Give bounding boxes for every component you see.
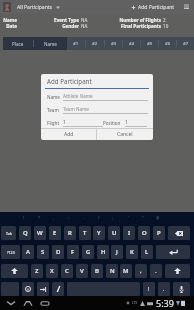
button[interactable]: Y xyxy=(93,226,105,240)
button[interactable]: ENT xyxy=(156,245,190,259)
button[interactable]: ! xyxy=(143,282,155,296)
button[interactable]: B xyxy=(91,264,103,278)
button[interactable]: E xyxy=(49,226,61,240)
button[interactable]: Q xyxy=(19,226,31,240)
staticText: - xyxy=(83,215,85,220)
button[interactable]: mic xyxy=(173,282,190,296)
staticText: ?123 xyxy=(7,250,15,255)
button[interactable]: G xyxy=(82,245,94,259)
button[interactable]: F xyxy=(67,245,79,259)
staticText: Y xyxy=(97,229,101,237)
button[interactable]: Tab xyxy=(1,226,16,240)
staticText: 1 xyxy=(125,119,128,125)
button[interactable]: ?123 xyxy=(1,245,20,259)
staticText: T xyxy=(83,229,87,237)
staticText: @ xyxy=(156,215,160,220)
button[interactable]: Cancel xyxy=(97,129,153,140)
button[interactable]: App icon xyxy=(3,2,11,12)
staticText: / xyxy=(98,215,100,220)
button[interactable]: K xyxy=(126,245,138,259)
staticText: K xyxy=(130,248,134,256)
button[interactable]: #2 xyxy=(86,37,104,50)
button[interactable]: Add xyxy=(41,129,96,140)
button[interactable]: Place xyxy=(3,37,33,50)
button[interactable]: , xyxy=(135,264,147,278)
staticText: #5 xyxy=(147,41,153,47)
button[interactable]: Back xyxy=(4,297,17,309)
staticText: All Participants xyxy=(17,4,52,11)
button[interactable]: L xyxy=(141,245,153,259)
button[interactable]: 1 xyxy=(125,119,147,127)
button[interactable]: Recent apps xyxy=(38,297,51,309)
staticText: Z xyxy=(35,267,39,275)
button[interactable]: A xyxy=(22,245,34,259)
button[interactable]: J xyxy=(111,245,123,259)
button[interactable]: smile xyxy=(22,282,34,296)
staticText: ! xyxy=(23,215,25,220)
button[interactable]: U xyxy=(108,226,120,240)
button[interactable]: Team Name xyxy=(63,106,148,114)
button[interactable]: Name xyxy=(34,37,67,50)
staticText: #1 xyxy=(73,41,79,47)
staticText: 5:39 xyxy=(156,297,174,309)
staticText: X xyxy=(50,267,54,275)
staticText: J xyxy=(116,248,118,256)
button[interactable]: 1 xyxy=(63,119,103,127)
staticText: Add Participant xyxy=(47,77,92,85)
staticText: P xyxy=(157,229,161,237)
staticText: #2 xyxy=(92,41,98,47)
staticText: H xyxy=(101,248,106,256)
staticText: Event Type xyxy=(19,17,79,23)
staticText: Add Participant xyxy=(138,4,175,11)
staticText: V xyxy=(80,267,84,275)
button[interactable]: . xyxy=(150,264,162,278)
button[interactable]: All Participants xyxy=(17,2,60,13)
button[interactable]: T xyxy=(79,226,91,240)
button[interactable]: O xyxy=(138,226,150,240)
button[interactable]: S xyxy=(37,245,49,259)
button[interactable]: tab2 xyxy=(37,282,49,296)
button[interactable]: R xyxy=(64,226,76,240)
button[interactable]: D xyxy=(52,245,64,259)
staticText: NA xyxy=(81,23,88,29)
staticText: G xyxy=(86,248,91,256)
button[interactable]: SH xyxy=(1,264,28,278)
staticText: ? xyxy=(38,215,40,220)
button[interactable]: #3 xyxy=(105,37,122,50)
staticText: Team xyxy=(47,107,59,113)
button[interactable]: #4 xyxy=(123,37,140,50)
button[interactable]: #6 xyxy=(159,37,176,50)
button[interactable]: More options xyxy=(182,3,190,11)
button[interactable]: DEL xyxy=(168,226,190,240)
button[interactable]: #7 xyxy=(177,37,194,50)
staticText: O xyxy=(142,229,147,237)
button[interactable]: M xyxy=(120,264,132,278)
button[interactable]: mic2 xyxy=(52,282,64,296)
button[interactable]: Athlete Name xyxy=(63,93,148,101)
staticText: D xyxy=(56,248,61,256)
button[interactable]: Add Participant xyxy=(131,2,175,13)
button[interactable]: SH xyxy=(165,264,190,278)
button[interactable]: X xyxy=(46,264,58,278)
button[interactable]: P xyxy=(153,226,165,240)
button[interactable]: H xyxy=(97,245,109,259)
button[interactable]: I xyxy=(123,226,135,240)
staticText: : xyxy=(68,215,70,220)
staticText: Flight xyxy=(47,120,60,126)
button[interactable]: N xyxy=(106,264,118,278)
button[interactable]: #5 xyxy=(141,37,158,50)
button[interactable]: #1 xyxy=(67,37,85,50)
staticText: F xyxy=(71,248,75,256)
staticText: Q xyxy=(23,229,28,237)
button[interactable]: Home xyxy=(21,297,34,309)
button[interactable]: V xyxy=(76,264,88,278)
staticText: Position xyxy=(103,120,121,126)
button[interactable]: C xyxy=(61,264,73,278)
staticText: Athlete Name xyxy=(63,93,93,99)
button[interactable]: Z xyxy=(31,264,43,278)
staticText: . xyxy=(155,267,157,275)
button[interactable]: W xyxy=(34,226,46,240)
button[interactable]: . xyxy=(158,282,170,296)
